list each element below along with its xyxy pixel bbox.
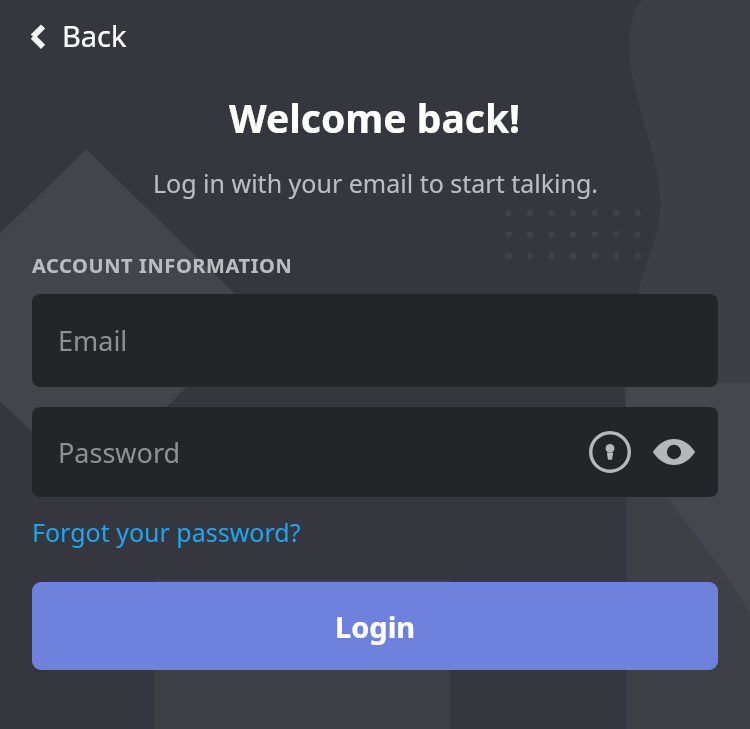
staticText: Email bbox=[58, 322, 128, 359]
staticText: ACCOUNT INFORMATION bbox=[32, 252, 293, 279]
button[interactable]: Password bbox=[32, 407, 718, 497]
button[interactable]: Forgot your password? bbox=[32, 515, 301, 549]
staticText: Log in with your email to start talking. bbox=[153, 166, 598, 200]
other: Back bbox=[22, 19, 56, 53]
staticText: Login bbox=[335, 607, 416, 646]
button[interactable]: Email bbox=[32, 294, 718, 387]
button[interactable]: Password manager bbox=[588, 430, 632, 474]
staticText: Forgot your password? bbox=[32, 515, 301, 549]
button[interactable]: Back bbox=[0, 0, 149, 65]
staticText: Back bbox=[62, 16, 127, 55]
button[interactable]: Show password bbox=[650, 428, 698, 476]
staticText: Password bbox=[58, 434, 181, 471]
button[interactable]: Login bbox=[32, 582, 718, 670]
staticText: Welcome back! bbox=[229, 91, 521, 144]
